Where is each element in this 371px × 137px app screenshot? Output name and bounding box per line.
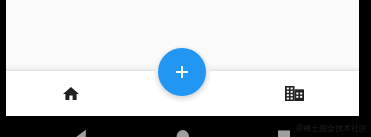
staticText: @稀土掘金技术社区 [296,122,368,133]
button[interactable]: Home [28,71,114,116]
button[interactable]: Add [158,48,206,96]
button[interactable]: Business [251,71,337,116]
